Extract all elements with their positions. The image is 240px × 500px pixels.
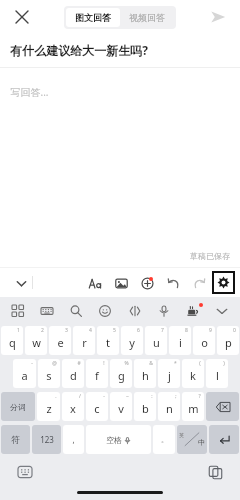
button[interactable]: Add — [136, 272, 158, 294]
button[interactable]: Collapse — [8, 270, 34, 296]
button[interactable]: Search — [66, 301, 86, 321]
staticText: v — [118, 401, 124, 416]
staticText: k — [190, 368, 196, 383]
button[interactable]: Redo — [188, 272, 210, 294]
button[interactable]: 1 — [1, 326, 23, 355]
button[interactable]: Emoji — [95, 301, 115, 321]
button[interactable]: ! — [86, 359, 108, 388]
staticText: , — [72, 434, 75, 445]
button[interactable]: Send — [202, 1, 234, 33]
button[interactable]: ( — [182, 359, 204, 388]
button[interactable]: Voice input — [154, 301, 174, 321]
button[interactable]: ? — [182, 392, 204, 421]
button[interactable]: & — [134, 359, 156, 388]
button[interactable]: ) — [206, 359, 228, 388]
staticText: n — [166, 401, 173, 416]
staticText: ( — [199, 360, 201, 367]
button[interactable]: - — [13, 359, 36, 388]
button[interactable]: ; — [158, 392, 180, 421]
staticText: s — [46, 368, 52, 383]
button[interactable]: Language toggle — [177, 425, 207, 454]
staticText: 7 — [161, 327, 164, 334]
staticText: 视频回答 — [129, 12, 165, 23]
staticText: - — [103, 393, 105, 400]
button[interactable]: 4 — [73, 326, 95, 355]
button[interactable]: 图文回答 — [66, 8, 120, 27]
button[interactable]: 3 — [49, 326, 71, 355]
button[interactable]: / — [62, 392, 84, 421]
button[interactable]: : — [134, 392, 156, 421]
staticText: e — [57, 335, 64, 350]
button[interactable]: , — [63, 425, 84, 454]
button[interactable]: 视频回答 — [120, 8, 174, 27]
staticText: i — [179, 335, 182, 350]
staticText: 123 — [40, 434, 54, 445]
staticText: a — [21, 368, 28, 383]
button[interactable]: # — [62, 359, 84, 388]
button[interactable]: 5 — [97, 326, 119, 355]
button[interactable]: Text style — [84, 272, 106, 294]
button[interactable]: * — [158, 359, 180, 388]
staticText: r — [82, 335, 87, 350]
staticText: 图文回答 — [75, 12, 111, 23]
button[interactable]: 2 — [25, 326, 47, 355]
staticText: & — [149, 360, 153, 367]
button[interactable]: 6 — [121, 326, 143, 355]
staticText: % — [124, 360, 129, 367]
button[interactable]: % — [110, 359, 132, 388]
button[interactable]: Translate — [125, 301, 145, 321]
button[interactable]: 空格 — [86, 425, 151, 454]
staticText: q — [9, 335, 16, 350]
staticText: d — [70, 368, 77, 383]
button[interactable]: 7 — [145, 326, 167, 355]
staticText: 分词 — [10, 402, 26, 412]
button[interactable]: Clipboard — [204, 461, 226, 483]
staticText: 4 — [89, 327, 92, 334]
staticText: . — [55, 393, 57, 400]
staticText: # — [77, 360, 81, 367]
staticText: j — [168, 368, 171, 383]
staticText: l — [216, 368, 219, 383]
staticText: 1 — [17, 327, 20, 334]
button[interactable]: - — [86, 392, 108, 421]
staticText: 符 — [11, 434, 20, 445]
button[interactable]: 9 — [193, 326, 215, 355]
staticText: b — [142, 401, 149, 416]
staticText: ) — [223, 360, 225, 367]
button[interactable]: 符 — [1, 425, 30, 454]
staticText: 2 — [41, 327, 44, 334]
button[interactable]: 。 — [153, 425, 175, 454]
staticText: 9 — [209, 327, 212, 334]
staticText: u — [153, 335, 160, 350]
button[interactable]: Settings — [214, 273, 233, 292]
staticText: ; — [175, 393, 177, 400]
button[interactable]: 分词 — [1, 392, 35, 421]
button[interactable]: . — [37, 392, 60, 421]
staticText: 6 — [137, 327, 140, 334]
button[interactable]: ~ — [110, 392, 132, 421]
button[interactable]: Switch keyboard — [14, 461, 36, 483]
staticText: m — [188, 401, 199, 416]
button[interactable]: Stickers — [183, 301, 203, 321]
staticText: 8 — [185, 327, 188, 334]
button[interactable]: Undo — [162, 272, 184, 294]
button[interactable]: 123 — [32, 425, 61, 454]
button[interactable]: 8 — [169, 326, 191, 355]
button[interactable]: 0 — [217, 326, 239, 355]
staticText: - — [31, 360, 33, 367]
button[interactable]: Hide keyboard — [212, 301, 232, 321]
button[interactable]: Apps — [8, 301, 28, 321]
staticText: 5 — [113, 327, 116, 334]
staticText: g — [118, 368, 125, 383]
button[interactable]: Keyboard layout — [37, 301, 57, 321]
button[interactable]: @ — [38, 359, 60, 388]
staticText: 0 — [233, 327, 236, 334]
button[interactable]: Insert image — [110, 272, 132, 294]
staticText: t — [106, 335, 110, 350]
button[interactable]: Backspace — [206, 392, 239, 421]
staticText: c — [94, 401, 100, 416]
staticText: / — [79, 393, 81, 400]
staticText: 。 — [161, 435, 168, 444]
button[interactable]: Enter — [209, 425, 239, 454]
button[interactable]: Close — [6, 1, 38, 33]
